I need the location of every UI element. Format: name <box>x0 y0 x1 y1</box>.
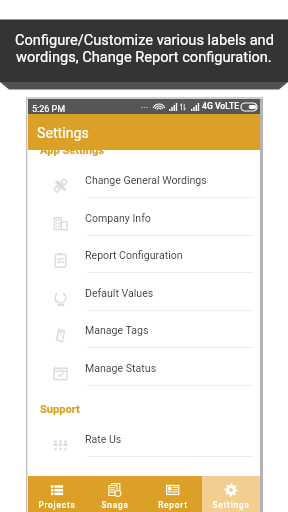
staticText: App Settings <box>40 144 104 157</box>
button[interactable]: Default Values <box>28 273 260 311</box>
staticText: wordings, Change Report configuration. <box>16 48 272 65</box>
staticText: Configure/Customize various labels and <box>15 31 274 48</box>
staticText: Default Values <box>85 287 154 299</box>
button[interactable]: Projects <box>28 476 86 512</box>
button[interactable]: Settings <box>202 476 260 512</box>
staticText: Settings <box>212 500 250 510</box>
staticText: Manage Status <box>85 362 157 374</box>
button[interactable]: Manage Status <box>28 348 260 386</box>
staticText: Report Configuration <box>85 249 183 261</box>
staticText: 5:26 PM <box>32 104 66 115</box>
button[interactable]: Report Configuration <box>28 235 260 273</box>
staticText: Company Info <box>85 212 151 224</box>
staticText: 4G VoLTE <box>202 101 240 111</box>
staticText: Rate Us <box>85 433 122 445</box>
staticText: Report <box>158 500 188 510</box>
button[interactable]: Snags <box>86 476 144 512</box>
button[interactable]: Company Info <box>28 198 260 236</box>
button[interactable]: Change General Wordings <box>28 160 260 198</box>
staticText: Change General Wordings <box>85 174 207 186</box>
staticText: Settings <box>37 125 89 142</box>
staticText: Snags <box>101 500 129 510</box>
button[interactable]: Manage Tags <box>28 310 260 348</box>
staticText: Projects <box>38 500 76 510</box>
staticText: ... <box>141 100 149 111</box>
staticText: Manage Tags <box>85 324 149 336</box>
button[interactable]: Report <box>144 476 202 512</box>
staticText: Support <box>40 403 80 416</box>
button[interactable]: Rate Us <box>28 419 260 457</box>
